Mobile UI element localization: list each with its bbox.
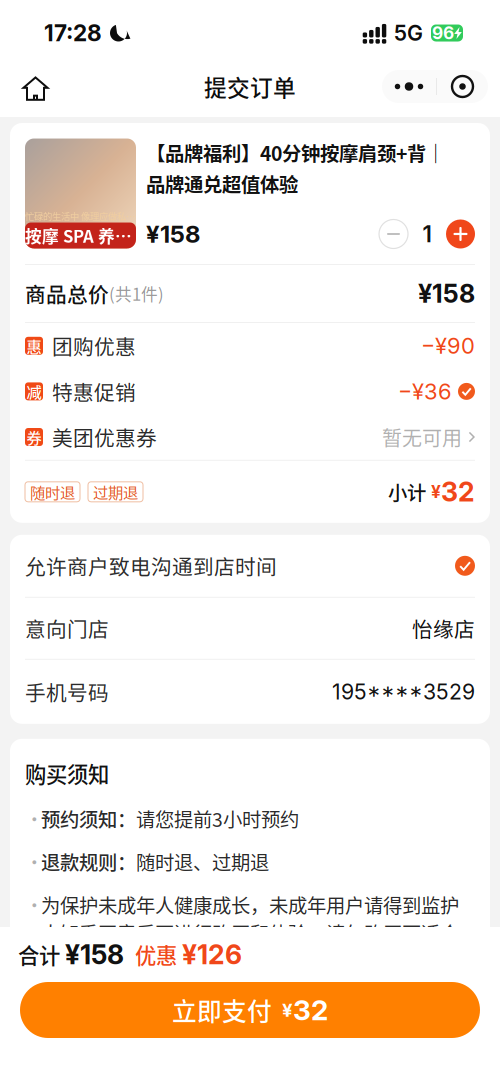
staticText: 随时退、过期退 [136,848,269,876]
staticText: 随时退 [30,481,75,503]
button[interactable]: 允许商户致电沟通到店时间 [10,535,490,597]
staticText: 过期退 [93,481,138,503]
staticText: 提交订单 [204,70,296,103]
staticText: • [25,891,44,918]
staticText: 按摩 SPA 养生 美容 [25,223,136,247]
staticText: 美团优惠券 [52,422,157,452]
staticText: • [25,848,44,875]
staticText: 32 [441,476,475,508]
staticText: 195****3529 [332,679,475,705]
staticText: 手机号码 [25,677,109,707]
staticText: ¥158 [65,938,124,971]
staticText: • [25,805,44,832]
staticText: 意向门店 [25,613,109,643]
staticText: 减 [26,380,41,402]
staticText: 32 [293,993,328,1027]
staticText: 1 [422,220,431,248]
staticText: 【品牌福利】40分钟按摩肩颈+背｜ [146,138,445,166]
staticText: 特惠促销 [52,376,136,406]
staticText: 怡缘店 [412,613,475,643]
button[interactable]: More [382,70,436,103]
staticText: −¥90 [421,332,475,359]
staticText: 允许商户致电沟通到店时间 [25,551,277,581]
staticText: ¥126 [182,938,242,971]
staticText: −¥36 [398,378,452,405]
staticText: 品牌通兑超值体验 [146,169,298,197]
staticText: 请您提前3小时预约 [136,805,299,833]
staticText: 立即支付 [172,992,272,1028]
button[interactable]: Close [437,70,488,103]
button[interactable]: 减 [10,369,490,414]
button[interactable]: Decrease quantity [379,219,408,248]
staticText: ¥158 [146,219,200,248]
staticText: 忙碌的生活中 像理应做私自己 [25,209,136,223]
staticText: 17:28 [44,19,102,47]
button[interactable]: 立即支付 [20,982,480,1038]
staticText: ¥158 [418,278,475,309]
staticText: ¥ [431,481,441,502]
staticText: (共1件) [109,281,164,305]
staticText: 退款规则： [41,848,136,876]
button[interactable]: Home [13,64,58,108]
button[interactable]: 券 [10,414,490,460]
staticText: 小计 [388,478,426,506]
staticText: 5G [394,20,423,46]
staticText: 团购优惠 [52,331,136,361]
staticText: 券 [26,426,41,448]
staticText: 惠 [26,335,41,357]
button[interactable]: Increase quantity [446,219,475,248]
staticText: 合计 [18,939,60,970]
staticText: 商品总价 [25,278,109,308]
staticText: 购买须知 [25,758,109,789]
staticText: ¥ [282,999,293,1021]
button[interactable]: 惠 [10,323,490,369]
staticText: 暂无可用 [382,422,462,451]
staticText: 优惠 [135,939,177,970]
staticText: 96 [432,22,454,43]
staticText: 预约须知： [41,805,136,833]
staticText: 为保护未成年人健康成长，未成年用户请得到监护人知悉同意后再进行购买和体验，请勿购… [41,891,459,975]
